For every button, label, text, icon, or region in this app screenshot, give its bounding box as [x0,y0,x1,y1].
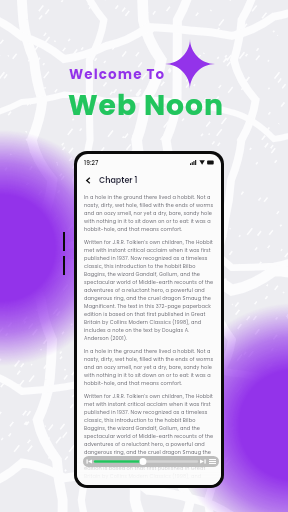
staticText: Chapter 1 [99,175,138,186]
staticText: 19:27 [84,159,99,167]
button[interactable]: Settings [209,458,216,465]
staticText: In a hole in the ground there lived a ho… [84,194,214,233]
staticText: Web Noon [68,85,224,124]
staticText: Written for J.R.R. Tolkien's own childre… [84,393,214,485]
button[interactable]: Back [83,175,94,186]
button[interactable]: Next [199,458,206,465]
button[interactable]: Previous [86,458,93,465]
staticText: In a hole in the ground there lived a ho… [84,348,214,387]
staticText: Written for J.R.R. Tolkien's own childre… [84,239,214,342]
staticText: Welcome To [69,65,166,84]
